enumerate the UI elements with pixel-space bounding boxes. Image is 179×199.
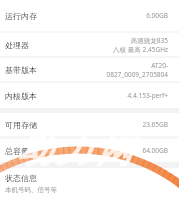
button[interactable]: 处理器	[0, 33, 179, 56]
staticText: 总容量	[5, 146, 29, 156]
staticText: 可用存储	[5, 120, 37, 130]
staticText: 23.65GB	[142, 120, 168, 129]
staticText: 0827_0009_2705804	[106, 70, 168, 79]
staticText: AT20-	[151, 61, 168, 70]
staticText: 64.00GB	[142, 146, 168, 155]
staticText: 4.4.153-perf+	[127, 91, 168, 100]
button[interactable]: 总容量	[0, 139, 179, 162]
button[interactable]: 基带版本	[0, 58, 179, 81]
staticText: 运行内存	[5, 11, 37, 21]
button[interactable]: 运行内存	[0, 0, 179, 31]
button[interactable]: 状态信息	[0, 168, 179, 199]
staticText: 基带版本	[5, 65, 37, 75]
button[interactable]: 可用存储	[0, 113, 179, 136]
staticText: 6.00GB	[146, 11, 168, 20]
staticText: 八核 最高 2.45GHz	[113, 45, 168, 54]
staticText: 内核版本	[5, 91, 37, 101]
staticText: 状态信息	[5, 173, 37, 183]
staticText: 高通骁龙835	[130, 36, 168, 45]
staticText: 本机号码、信号等	[5, 186, 57, 194]
button[interactable]: 内核版本	[0, 83, 179, 108]
staticText: 处理器	[5, 40, 29, 50]
staticText: 动力网	[14, 127, 134, 172]
